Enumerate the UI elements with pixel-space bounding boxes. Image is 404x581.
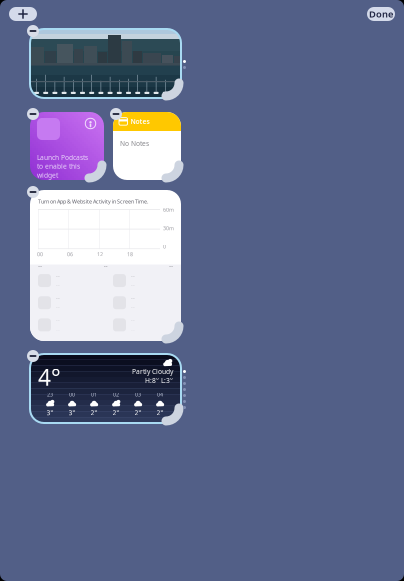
staticText: -- [56, 272, 60, 280]
button[interactable]: Done [367, 7, 395, 21]
staticText: No Notes [120, 139, 149, 148]
staticText: Turn on App & Website Activity in Screen… [38, 198, 148, 205]
staticText: 23 [47, 391, 53, 398]
staticText: -- [131, 272, 135, 280]
staticText: -- [131, 304, 135, 311]
staticText: -- [56, 304, 60, 311]
staticText: 3° [68, 408, 75, 417]
staticText: 4° [38, 362, 61, 392]
staticText: Launch Podcasts [37, 153, 88, 162]
staticText: 30m [163, 224, 174, 232]
staticText: -- [103, 261, 107, 270]
staticText: -- [38, 261, 42, 270]
staticText: 2° [134, 408, 141, 417]
staticText: -- [131, 317, 135, 324]
staticText: 2° [156, 408, 163, 417]
staticText: Notes [130, 117, 149, 126]
staticText: 3° [46, 408, 53, 417]
staticText: to enable this [37, 162, 80, 171]
staticText: 00 [69, 391, 75, 398]
staticText: 2° [112, 408, 119, 417]
staticText: Partly Cloudy [132, 367, 173, 376]
staticText: 03 [135, 391, 141, 398]
staticText: 60m [163, 206, 174, 213]
staticText: 06 [67, 250, 73, 258]
staticText: widget [37, 171, 58, 180]
staticText: 00 [37, 250, 43, 258]
staticText: Done [369, 8, 393, 20]
staticText: -- [131, 282, 135, 289]
staticText: 2° [90, 408, 97, 417]
staticText: 0 [163, 243, 166, 250]
staticText: -- [56, 317, 60, 324]
staticText: -- [56, 282, 60, 289]
staticText: 18 [127, 250, 133, 258]
staticText: 04 [157, 391, 163, 398]
staticText: -- [169, 261, 173, 270]
staticText: -- [56, 295, 60, 302]
staticText: H:8° L:3° [145, 376, 173, 385]
staticText: 12 [97, 250, 103, 258]
staticText: 01 [91, 391, 97, 398]
staticText: -- [131, 295, 135, 302]
staticText: 02 [113, 391, 119, 398]
button[interactable]: Add Widget [9, 7, 37, 21]
